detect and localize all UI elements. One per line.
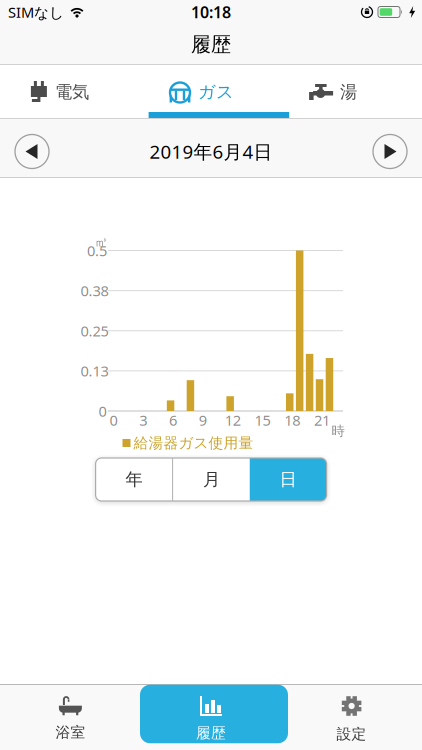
- staticText: 年: [125, 469, 142, 490]
- button[interactable]: 湯: [281, 65, 422, 118]
- staticText: ガス: [198, 81, 234, 103]
- button[interactable]: 次の日: [372, 133, 408, 169]
- staticText: 日: [280, 469, 297, 490]
- staticText: SIMなし: [8, 2, 64, 22]
- button[interactable]: 設定: [281, 686, 422, 750]
- staticText: 浴室: [55, 723, 85, 741]
- staticText: 0.25: [80, 321, 108, 340]
- staticText: 21: [314, 410, 330, 430]
- button[interactable]: 前の日: [14, 133, 50, 169]
- staticText: 0: [109, 410, 117, 430]
- staticText: 10:18: [191, 1, 231, 23]
- staticText: 18: [284, 410, 300, 430]
- button[interactable]: 履歴: [141, 686, 281, 750]
- staticText: ㎥: [94, 234, 107, 250]
- staticText: 湯: [340, 81, 357, 103]
- button[interactable]: 電気: [0, 65, 141, 118]
- staticText: 9: [199, 410, 207, 430]
- staticText: 月: [203, 469, 220, 490]
- staticText: 時: [331, 423, 344, 439]
- button[interactable]: 浴室: [0, 686, 141, 750]
- staticText: 15: [254, 410, 270, 430]
- staticText: 6: [169, 410, 177, 430]
- button[interactable]: 月: [173, 458, 250, 501]
- staticText: 0: [98, 401, 106, 421]
- staticText: 12: [225, 410, 241, 430]
- staticText: 電気: [55, 81, 89, 103]
- staticText: 給湯器ガス使用量: [133, 434, 253, 452]
- button[interactable]: 年: [96, 458, 172, 501]
- button[interactable]: ガス: [141, 65, 281, 118]
- button[interactable]: 日: [250, 458, 326, 501]
- staticText: 履歴: [196, 724, 226, 742]
- staticText: 0.38: [80, 281, 108, 300]
- staticText: 設定: [337, 725, 367, 743]
- staticText: 履歴: [191, 32, 231, 57]
- staticText: 0.13: [80, 361, 108, 381]
- staticText: 3: [139, 410, 147, 430]
- staticText: 2019年6月4日: [149, 139, 272, 164]
- staticText: 0.5: [87, 241, 107, 260]
